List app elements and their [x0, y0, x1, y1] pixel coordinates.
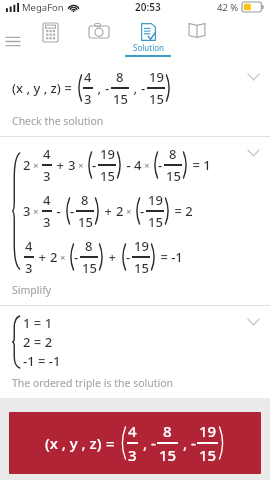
- staticText: 3: [43, 213, 51, 231]
- staticText: 3: [23, 202, 31, 220]
- staticText: +: [35, 248, 50, 266]
- staticText: -: [126, 248, 131, 266]
- staticText: ×: [76, 159, 86, 171]
- staticText: 8: [85, 237, 93, 255]
- staticText: -: [105, 79, 110, 97]
- staticText: (x , y , z): [45, 433, 102, 453]
- staticText: +: [101, 202, 116, 220]
- staticText: 4: [128, 421, 137, 441]
- staticText: 3: [25, 259, 33, 277]
- staticText: 2: [116, 202, 124, 220]
- staticText: -: [151, 433, 156, 453]
- staticText: 4: [84, 68, 92, 86]
- staticText: The ordered triple is the solution: [12, 376, 174, 390]
- staticText: +: [53, 156, 68, 174]
- staticText: 15: [113, 90, 128, 108]
- staticText: Simplify: [12, 283, 52, 297]
- staticText: 15: [166, 167, 181, 185]
- staticText: 4: [43, 191, 51, 209]
- staticText: 8: [116, 68, 124, 86]
- button[interactable]: Calculator: [26, 20, 74, 62]
- staticText: = 1: [189, 156, 211, 174]
- staticText: ×: [31, 205, 41, 217]
- staticText: 15: [149, 90, 164, 108]
- staticText: 3: [128, 445, 137, 465]
- staticText: 8: [81, 191, 89, 209]
- staticText: -: [158, 156, 163, 174]
- button[interactable]: Camera: [74, 20, 123, 62]
- staticText: 19: [149, 68, 164, 86]
- staticText: 4: [25, 237, 33, 255]
- staticText: +: [105, 248, 120, 266]
- staticText: 3: [68, 156, 76, 174]
- staticText: ,: [94, 79, 105, 97]
- staticText: = 2: [171, 202, 193, 220]
- staticText: 2: [50, 248, 58, 266]
- staticText: ×: [58, 251, 68, 263]
- staticText: 2: [23, 156, 31, 174]
- staticText: 19: [148, 191, 163, 209]
- staticText: (x , y , z): [12, 79, 61, 97]
- staticText: ,: [130, 79, 141, 97]
- staticText: 19: [199, 421, 217, 441]
- staticText: 8: [169, 145, 177, 163]
- button[interactable]: Solution: [123, 20, 172, 62]
- button[interactable]: Menu: [0, 20, 26, 62]
- staticText: =: [102, 433, 119, 453]
- staticText: -: [191, 433, 196, 453]
- staticText: -: [92, 156, 97, 174]
- staticText: 20:53: [135, 0, 161, 14]
- staticText: -: [74, 248, 79, 266]
- staticText: -: [70, 202, 75, 220]
- staticText: ×: [124, 205, 134, 217]
- staticText: -: [123, 156, 134, 174]
- staticText: ×: [142, 159, 152, 171]
- staticText: 3: [43, 167, 51, 185]
- button[interactable]: Collapse: [242, 142, 264, 164]
- staticText: Solution: [133, 42, 164, 53]
- staticText: Check the solution: [12, 114, 104, 128]
- staticText: 4: [43, 145, 51, 163]
- staticText: 2 = 2: [23, 333, 53, 351]
- staticText: -1 = -1: [23, 352, 61, 370]
- staticText: ,: [139, 433, 151, 453]
- staticText: =: [61, 79, 76, 97]
- staticText: 42 %: [217, 1, 239, 14]
- staticText: -: [140, 202, 145, 220]
- staticText: 4: [134, 156, 142, 174]
- button[interactable]: Collapse: [242, 66, 264, 88]
- staticText: 3: [84, 90, 92, 108]
- staticText: 15: [199, 445, 217, 465]
- button[interactable]: (x , y , z): [9, 412, 261, 474]
- staticText: 15: [134, 259, 149, 277]
- staticText: -: [141, 79, 146, 97]
- staticText: 15: [100, 167, 115, 185]
- staticText: 15: [78, 213, 93, 231]
- staticText: ×: [31, 159, 41, 171]
- button[interactable]: Collapse: [242, 311, 264, 333]
- staticText: 19: [134, 237, 149, 255]
- staticText: 15: [148, 213, 163, 231]
- staticText: -: [53, 202, 64, 220]
- staticText: 15: [159, 445, 177, 465]
- staticText: 15: [82, 259, 97, 277]
- staticText: 8: [163, 421, 172, 441]
- staticText: ,: [179, 433, 191, 453]
- button[interactable]: Book: [172, 20, 221, 62]
- staticText: = -1: [157, 248, 183, 266]
- staticText: 19: [100, 145, 115, 163]
- staticText: MegaFon: [22, 1, 64, 14]
- staticText: 1 = 1: [23, 314, 53, 332]
